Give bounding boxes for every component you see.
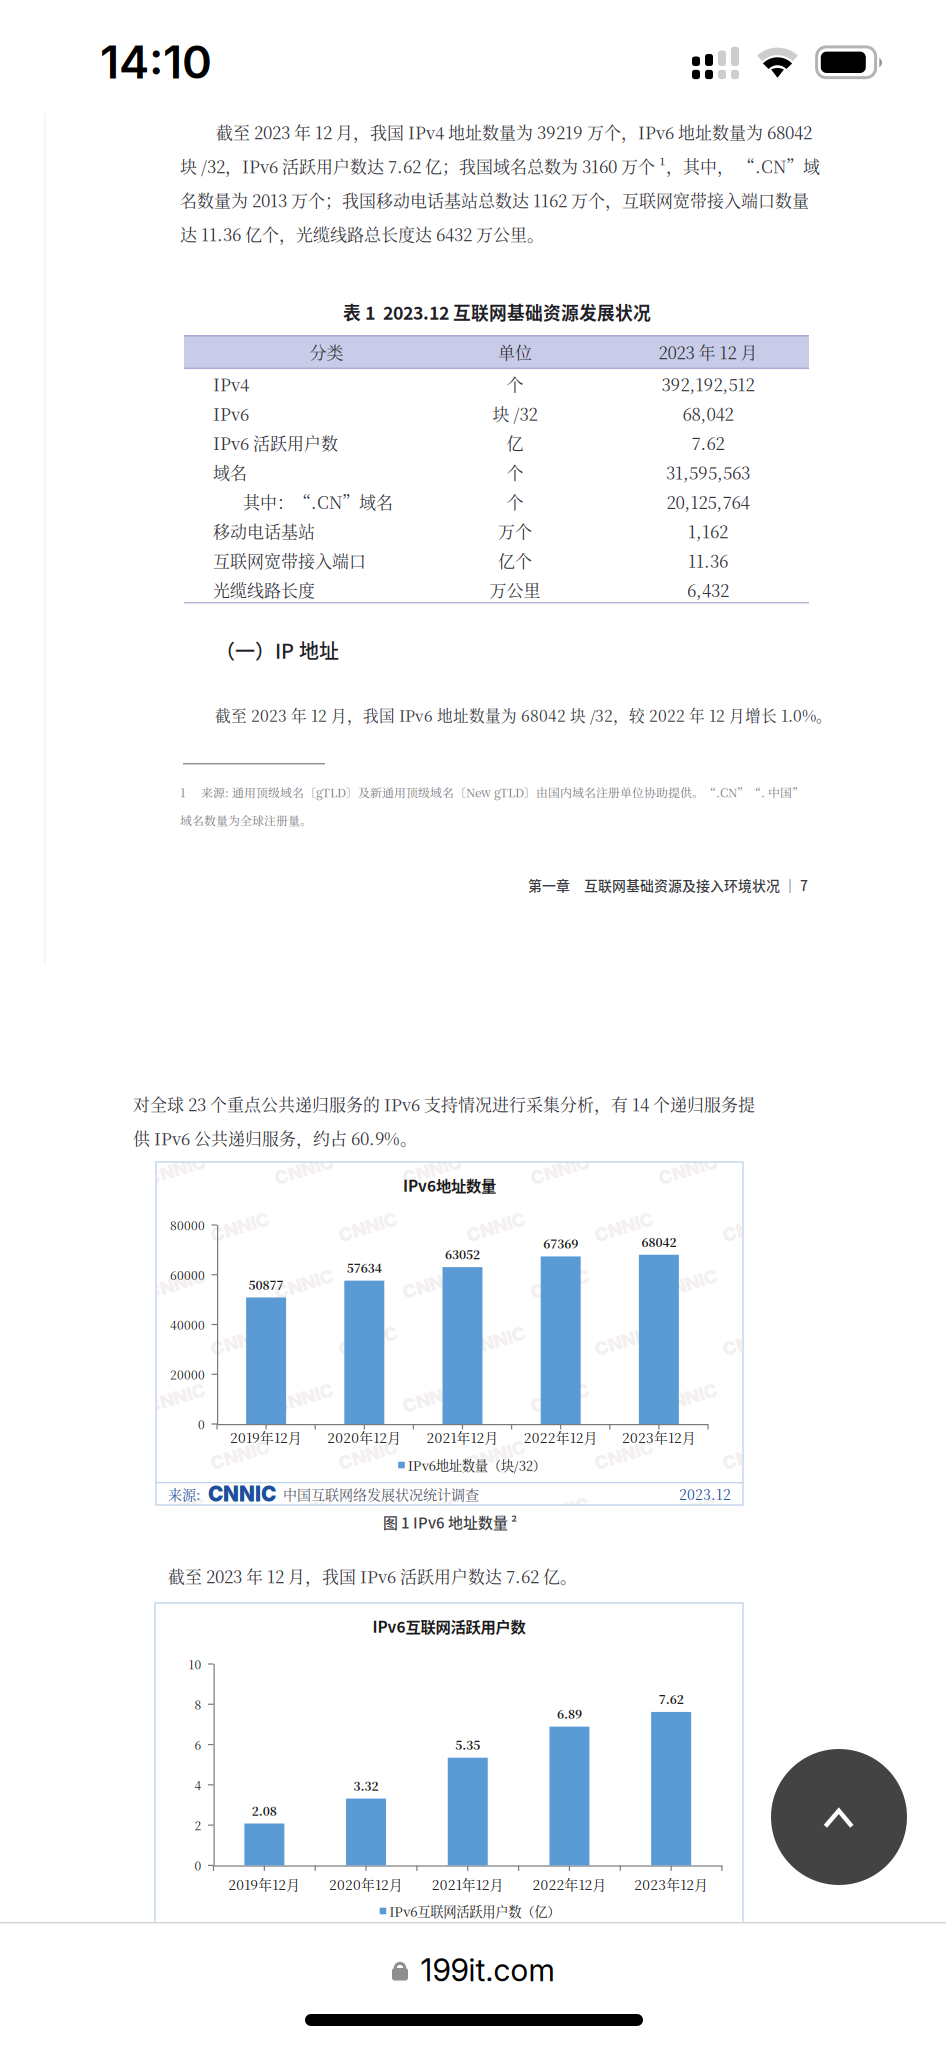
staticText: 392,192,512	[661, 372, 754, 396]
staticText: 单位	[498, 340, 532, 364]
staticText: 57634	[347, 1259, 382, 1276]
staticText: 14:10	[100, 35, 212, 89]
staticText: 域名数量为全球注册量。	[180, 811, 312, 829]
staticText: CNNIC	[721, 1216, 782, 1238]
staticText: CNNIC	[273, 1501, 334, 1523]
staticText: 互联网宽带接入端口	[213, 548, 366, 572]
button[interactable]: 199it.com	[213, 1937, 733, 2003]
staticText: 31,595,563	[666, 460, 750, 484]
staticText: IPv6地址数量	[403, 1174, 496, 1196]
staticText: CNNIC	[593, 1444, 654, 1466]
staticText: 截至 2023 年 12 月，我国 IPv6 活跃用户数达 7.62 亿。	[168, 1564, 577, 1588]
staticText: 2023 年 12 月	[658, 340, 757, 364]
staticText: 第一章 互联网基础资源及接入环境状况 ｜ 7	[528, 875, 808, 895]
staticText: CNNIC	[145, 1273, 206, 1295]
staticText: 2019年12月	[230, 1427, 302, 1447]
staticText: 2.08	[252, 1802, 277, 1819]
staticText: CNNIC	[593, 1330, 654, 1352]
staticText: CNNIC	[593, 1216, 654, 1238]
staticText: 其中：“.CN”域名	[243, 489, 393, 514]
staticText: CNNIC	[657, 1273, 718, 1295]
staticText: 1,162	[688, 519, 728, 543]
staticText: 80000	[170, 1216, 205, 1234]
staticText: 域名	[213, 460, 247, 484]
staticText: 个	[506, 489, 523, 514]
staticText: CNNIC	[529, 1159, 590, 1181]
staticText: CNNIC	[529, 1501, 590, 1523]
staticText: 63052	[445, 1245, 480, 1263]
staticText: CNNIC	[465, 1558, 526, 1580]
staticText: 6	[194, 1736, 201, 1753]
staticText: CNNIC	[273, 1387, 334, 1409]
staticText: 50877	[249, 1276, 284, 1293]
staticText: CNNIC	[337, 1330, 398, 1352]
staticText: 199it.com	[420, 1951, 554, 1988]
staticText: 2020年12月	[329, 1874, 403, 1894]
staticText: CNNIC	[209, 1444, 270, 1466]
staticText: CNNIC	[273, 1273, 334, 1295]
staticText: CNNIC	[465, 1444, 526, 1466]
staticText: CNNIC	[337, 1444, 398, 1466]
staticText: 1 来源: 通用顶级域名〔gTLD〕及新通用顶级域名〔New gTLD〕由国内域…	[180, 783, 804, 801]
staticText: 7.62	[691, 431, 724, 455]
staticText: 10	[188, 1655, 201, 1673]
staticText: 达 11.36 亿个，光缆线路总长度达 6432 万公里。	[180, 222, 544, 246]
staticText: 移动电话基站	[213, 519, 315, 543]
staticText: CNNIC	[401, 1501, 462, 1523]
staticText: CNNIC	[657, 1159, 718, 1181]
staticText: CNNIC	[657, 1501, 718, 1523]
staticText: 截至 2023 年 12 月，我国 IPv4 地址数量为 39219 万个，IP…	[216, 120, 812, 144]
staticText: 亿	[506, 431, 523, 455]
staticText: CNNIC	[529, 1273, 590, 1295]
staticText: IPv4	[213, 372, 249, 396]
staticText: 6.89	[557, 1705, 582, 1722]
staticText: 6,432	[687, 578, 729, 602]
staticText: 5.35	[455, 1736, 480, 1753]
staticText: CNNIC	[529, 1387, 590, 1409]
staticText: 万公里	[489, 578, 540, 602]
staticText: CNNIC	[145, 1387, 206, 1409]
staticText: 68042	[641, 1233, 676, 1250]
staticText: CNNIC	[209, 1558, 270, 1580]
staticText: 个	[506, 372, 523, 396]
staticText: 分类	[309, 340, 343, 364]
staticText: 4	[194, 1776, 201, 1793]
staticText: 表 1 2023.12 互联网基础资源发展状况	[343, 299, 651, 325]
staticText: 20,125,764	[666, 489, 749, 514]
staticText: 2022年12月	[532, 1874, 606, 1894]
staticText: IPv6互联网活跃用户数（亿）	[389, 1901, 560, 1921]
staticText: 图 1 IPv6 地址数量 ²	[383, 1511, 517, 1533]
staticText: 块 /32，IPv6 活跃用户数达 7.62 亿；我国域名总数为 3160 万个…	[180, 154, 820, 178]
staticText: 3.32	[354, 1777, 379, 1794]
staticText: CNNIC	[721, 1330, 782, 1352]
staticText: CNNIC	[145, 1159, 206, 1181]
staticText: 60000	[170, 1266, 205, 1283]
staticText: 中国互联网络发展状况统计调查	[283, 1484, 479, 1504]
staticText: 20000	[170, 1366, 205, 1383]
staticText: CNNIC	[209, 1216, 270, 1238]
staticText: 块 /32	[492, 401, 537, 425]
staticText: 2022年12月	[524, 1427, 598, 1447]
staticText: 68,042	[682, 401, 733, 425]
staticText: CNNIC	[208, 1481, 276, 1506]
staticText: CNNIC	[209, 1330, 270, 1352]
staticText: CNNIC	[721, 1444, 782, 1466]
staticText: IPv6 活跃用户数	[213, 431, 338, 455]
staticText: 2023年12月	[622, 1427, 696, 1447]
staticText: 7.62	[659, 1690, 684, 1707]
staticText: 8	[194, 1696, 201, 1713]
staticText: 对全球 23 个重点公共递归服务的 IPv6 支持情况进行采集分析，有 14 个…	[133, 1092, 755, 1116]
staticText: IPv6	[213, 401, 249, 425]
staticText: 0	[198, 1415, 205, 1433]
staticText: 2023.12	[679, 1484, 731, 1504]
button[interactable]: Scroll to top	[771, 1749, 907, 1885]
staticText: 截至 2023 年 12 月，我国 IPv6 地址数量为 68042 块 /32…	[215, 704, 832, 726]
staticText: IPv6互联网活跃用户数	[372, 1615, 525, 1637]
